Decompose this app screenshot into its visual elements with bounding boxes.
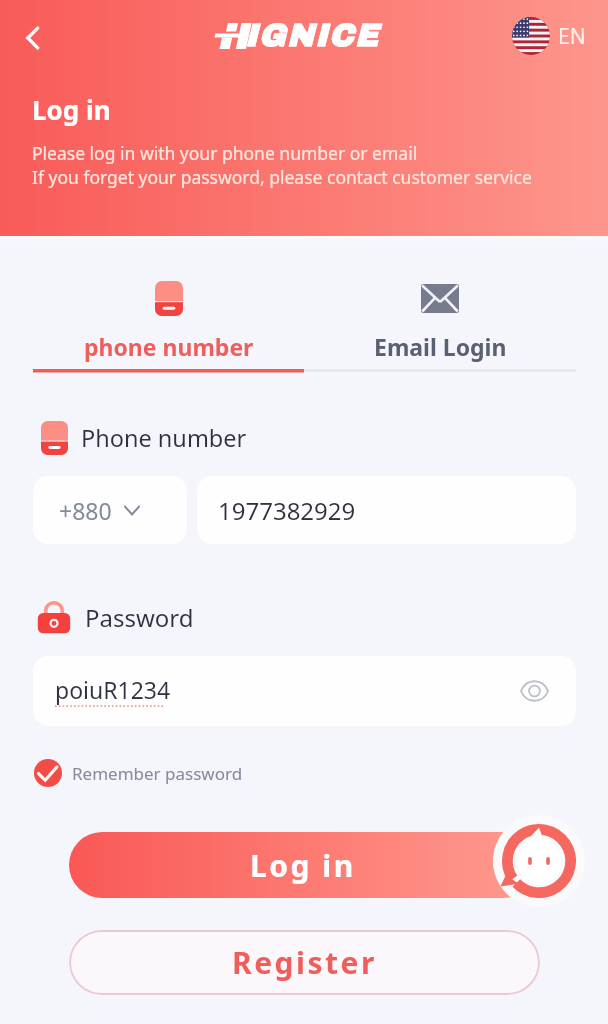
button[interactable]: poiuR1234 — [33, 656, 576, 726]
staticText: Remember password — [72, 762, 243, 785]
staticText: Log in — [32, 92, 111, 127]
staticText: Register — [232, 942, 377, 983]
button[interactable]: Customer service chat — [493, 815, 585, 907]
button[interactable]: Register — [69, 930, 540, 995]
staticText: poiuR1234 — [55, 674, 171, 705]
button[interactable]: Language English — [512, 17, 586, 55]
staticText: phone number — [84, 331, 254, 362]
button[interactable]: Email Login — [304, 262, 576, 372]
staticText: Please log in with your phone number or … — [32, 141, 418, 165]
staticText: 1977382929 — [218, 494, 356, 527]
button[interactable]: Country code +880 — [33, 476, 187, 544]
staticText: Password — [85, 601, 194, 634]
staticText: IGNICE — [245, 18, 380, 53]
button[interactable]: Show password — [517, 674, 551, 708]
button[interactable]: Back — [13, 18, 53, 58]
button[interactable]: Log in — [69, 832, 536, 898]
staticText: EN — [558, 22, 586, 51]
button[interactable]: Remember password — [34, 754, 243, 792]
staticText: Email Login — [374, 331, 507, 362]
staticText: Log in — [250, 845, 356, 886]
staticText: +880 — [59, 495, 112, 526]
button[interactable]: 1977382929 — [197, 476, 576, 544]
staticText: If you forget your password, please cont… — [32, 165, 532, 189]
staticText: Phone number — [81, 422, 247, 454]
button[interactable]: phone number — [33, 262, 304, 372]
